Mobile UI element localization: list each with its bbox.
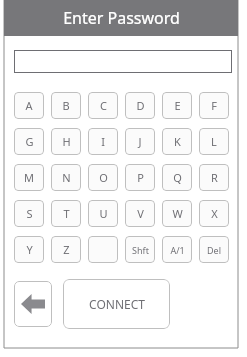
staticText: U: [99, 206, 108, 221]
staticText: CONNECT: [89, 296, 145, 312]
staticText: A/1: [170, 244, 185, 256]
staticText: Enter Password: [63, 7, 180, 29]
button[interactable]: V: [125, 200, 155, 227]
staticText: A: [25, 98, 33, 113]
button[interactable]: X: [199, 200, 229, 227]
staticText: P: [137, 170, 144, 185]
button[interactable]: CONNECT: [63, 279, 170, 329]
button[interactable]: Del: [199, 236, 229, 263]
button[interactable]: U: [88, 200, 118, 227]
button[interactable]: D: [125, 92, 155, 119]
button[interactable]: [14, 50, 232, 73]
button[interactable]: T: [51, 200, 81, 227]
button[interactable]: I: [88, 128, 118, 155]
button[interactable]: Q: [162, 164, 192, 191]
button[interactable]: K: [162, 128, 192, 155]
button[interactable]: O: [88, 164, 118, 191]
button[interactable]: C: [88, 92, 118, 119]
button[interactable]: H: [51, 128, 81, 155]
staticText: W: [172, 206, 183, 221]
staticText: N: [62, 170, 71, 185]
button[interactable]: W: [162, 200, 192, 227]
button[interactable]: B: [51, 92, 81, 119]
staticText: H: [62, 134, 71, 149]
staticText: R: [211, 170, 218, 185]
button[interactable]: Back: [14, 281, 52, 327]
staticText: Shft: [132, 244, 149, 256]
staticText: C: [100, 98, 107, 113]
staticText: D: [136, 98, 145, 113]
staticText: M: [24, 170, 34, 185]
button[interactable]: P: [125, 164, 155, 191]
staticText: V: [137, 206, 144, 221]
staticText: J: [138, 134, 142, 149]
staticText: O: [99, 170, 108, 185]
button[interactable]: N: [51, 164, 81, 191]
staticText: Z: [63, 242, 70, 257]
staticText: Q: [173, 170, 182, 185]
button[interactable]: L: [199, 128, 229, 155]
button[interactable]: [88, 236, 118, 263]
button[interactable]: Shft: [125, 236, 155, 263]
staticText: T: [63, 206, 70, 221]
staticText: G: [25, 134, 34, 149]
staticText: Del: [207, 244, 221, 256]
staticText: X: [211, 206, 218, 221]
staticText: S: [26, 206, 33, 221]
staticText: E: [174, 98, 181, 113]
staticText: I: [101, 134, 105, 149]
staticText: K: [174, 134, 181, 149]
button[interactable]: Z: [51, 236, 81, 263]
button[interactable]: A: [14, 92, 44, 119]
staticText: B: [62, 98, 70, 113]
button[interactable]: J: [125, 128, 155, 155]
staticText: L: [211, 134, 217, 149]
button[interactable]: R: [199, 164, 229, 191]
button[interactable]: F: [199, 92, 229, 119]
button[interactable]: E: [162, 92, 192, 119]
button[interactable]: A/1: [162, 236, 192, 263]
staticText: F: [211, 98, 217, 113]
button[interactable]: G: [14, 128, 44, 155]
button[interactable]: S: [14, 200, 44, 227]
staticText: Y: [26, 242, 33, 257]
button[interactable]: M: [14, 164, 44, 191]
button[interactable]: Y: [14, 236, 44, 263]
